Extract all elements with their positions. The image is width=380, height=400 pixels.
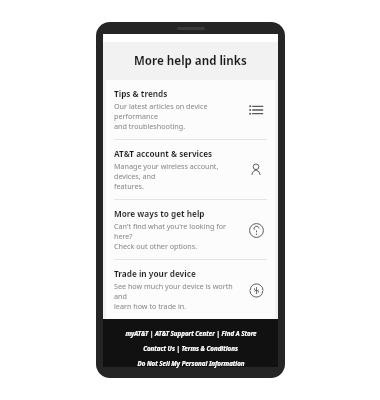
other: Trade in your device bbox=[245, 279, 267, 301]
button[interactable]: Contact Us | Terms & Conditions bbox=[137, 344, 244, 352]
button[interactable]: Tips & trends bbox=[106, 80, 275, 139]
staticText: See how much your device is worth and le… bbox=[114, 281, 245, 311]
button[interactable]: AT&T account & services bbox=[106, 140, 275, 199]
staticText: Our latest articles on device performanc… bbox=[114, 101, 245, 131]
button[interactable]: Do Not Sell My Personal Information bbox=[131, 359, 251, 367]
staticText: Tips & trends bbox=[114, 88, 168, 99]
staticText: AT&T account & services bbox=[114, 148, 213, 159]
staticText: More ways to get help bbox=[114, 208, 205, 219]
other: Account and services bbox=[245, 159, 267, 181]
staticText: Can't find what you're looking for here?… bbox=[114, 221, 245, 251]
staticText: More help and links bbox=[134, 53, 247, 69]
button[interactable]: Trade in your device bbox=[106, 260, 275, 319]
staticText: Manage your wireless account, devices, a… bbox=[114, 161, 245, 191]
button[interactable]: More ways to get help bbox=[106, 200, 275, 259]
staticText: Trade in your device bbox=[114, 268, 196, 279]
other: Tips and trends bbox=[245, 99, 267, 121]
other: More ways to get help bbox=[245, 219, 267, 241]
button[interactable]: myAT&T | AT&T Support Center | Find A St… bbox=[119, 329, 263, 337]
